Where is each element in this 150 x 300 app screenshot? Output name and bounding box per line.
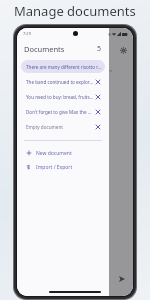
button[interactable]: Don't forget to give Max the box... bbox=[21, 105, 105, 118]
staticText: Empty document bbox=[26, 124, 94, 130]
staticText: New document bbox=[36, 150, 72, 157]
button[interactable]: Import / Export bbox=[17, 161, 109, 173]
button[interactable]: Delete document bbox=[94, 123, 102, 131]
staticText: 7:29 bbox=[23, 31, 31, 36]
staticText: Don't forget to give Max the box... bbox=[26, 109, 94, 115]
staticText: specific kind of rice for risotto. Other… bbox=[21, 82, 102, 88]
staticText: 7:29 bbox=[23, 31, 31, 36]
button[interactable]: There are many different risotto recipes… bbox=[21, 60, 105, 73]
staticText: rice of an appropriate variety. There is… bbox=[21, 75, 99, 81]
button[interactable]: Empty document bbox=[21, 120, 105, 133]
staticText: Manage documents bbox=[14, 2, 136, 20]
button[interactable]: You need to buy: bread, fruits, p... bbox=[21, 90, 105, 103]
staticText: different ingredients, but they are all … bbox=[21, 68, 113, 74]
staticText: You need to buy: bread, fruits, p... bbox=[26, 94, 94, 100]
staticText: There are many different risotto recipes… bbox=[21, 61, 109, 67]
button[interactable]: The band continued to explore a... bbox=[21, 75, 105, 88]
button[interactable]: New document bbox=[17, 147, 109, 159]
staticText: parboiled rice, are not suitable. Each o… bbox=[21, 96, 98, 102]
staticText: There are many different risotto recipes… bbox=[26, 64, 102, 70]
button[interactable]: Send bbox=[116, 273, 128, 285]
staticText: 5 bbox=[97, 44, 102, 54]
button[interactable]: Delete document bbox=[94, 78, 102, 86]
button[interactable]: Settings bbox=[118, 45, 129, 56]
staticText: Documents bbox=[24, 44, 65, 54]
staticText: The band continued to explore a... bbox=[26, 79, 94, 85]
button[interactable]: Delete document bbox=[94, 93, 102, 101]
button[interactable]: Delete document bbox=[94, 108, 102, 116]
staticText: Import / Export bbox=[36, 164, 73, 171]
